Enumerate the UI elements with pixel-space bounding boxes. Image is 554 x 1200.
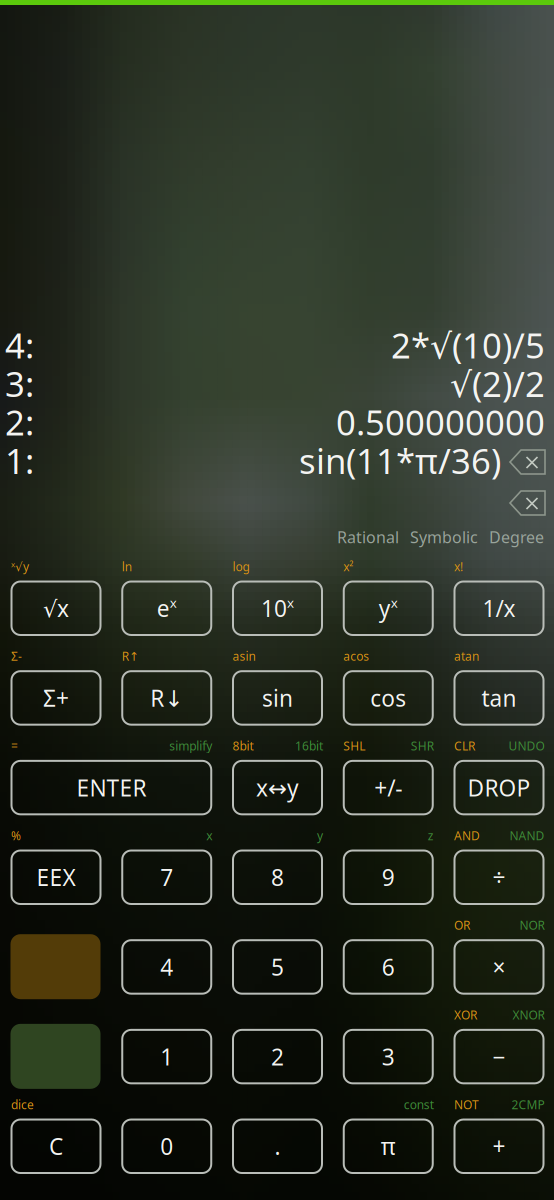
button[interactable]: 2: [5, 403, 65, 441]
staticText: 4: [5, 322, 34, 368]
staticText: sin [262, 683, 293, 713]
staticText: % [11, 827, 21, 843]
staticText: e [157, 593, 170, 623]
button[interactable]: 4: [5, 326, 65, 364]
staticText: x [206, 827, 212, 843]
staticText: Σ+ [43, 683, 69, 713]
staticText: 7 [160, 862, 173, 892]
staticText: x! [454, 558, 463, 574]
staticText: atan [454, 648, 479, 664]
staticText: x [287, 594, 294, 611]
button[interactable]: cos [344, 671, 433, 725]
button[interactable]: e [122, 581, 211, 635]
staticText: NOR [519, 917, 544, 933]
button[interactable]: sin(11*π/36) [65, 441, 501, 479]
staticText: 16bit [295, 738, 323, 754]
button[interactable]: 4 [122, 940, 211, 994]
button[interactable]: √(2)/2 [65, 364, 545, 402]
staticText: 2*√(10)/5 [391, 322, 545, 368]
button[interactable]: Σ+ [11, 671, 100, 725]
button[interactable]: ENTER [11, 761, 211, 814]
button[interactable]: 5 [233, 940, 322, 994]
staticText: OR [454, 917, 470, 933]
staticText: ln [122, 558, 132, 574]
button[interactable]: 3 [344, 1030, 433, 1083]
button[interactable]: Green shift key [10, 1024, 100, 1089]
staticText: tan [481, 683, 516, 713]
staticText: 9 [382, 862, 395, 892]
staticText: NOT [454, 1097, 479, 1112]
button[interactable]: y [344, 581, 433, 635]
button[interactable]: Orange shift key [10, 934, 100, 999]
staticText: √x [43, 593, 69, 623]
button[interactable]: 1 [122, 1030, 211, 1083]
button[interactable]: Symbolic [410, 526, 478, 548]
staticText: SHR [411, 738, 434, 754]
button[interactable]: π [344, 1119, 433, 1173]
staticText: Σ- [11, 648, 22, 664]
staticText: x² [343, 558, 353, 574]
staticText: +/- [374, 772, 402, 803]
staticText: cos [370, 683, 406, 713]
button[interactable]: Backspace [509, 449, 547, 476]
staticText: = [11, 738, 18, 754]
button[interactable]: sin [233, 671, 322, 725]
button[interactable]: 7 [122, 850, 211, 904]
button[interactable]: 1: [5, 441, 65, 479]
staticText: 2 [271, 1041, 284, 1072]
staticText: SHL [343, 738, 365, 754]
staticText: CLR [454, 738, 475, 754]
button[interactable]: 3: [5, 364, 65, 402]
staticText: ENTER [76, 772, 146, 803]
button[interactable]: 9 [344, 850, 433, 904]
staticText: × [492, 952, 505, 982]
staticText: simplify [169, 738, 212, 754]
staticText: NAND [509, 827, 544, 843]
staticText: 1/x [482, 593, 515, 623]
staticText: 3 [382, 1041, 395, 1072]
staticText: AND [454, 827, 480, 843]
staticText: − [492, 1041, 505, 1072]
button[interactable]: 8 [233, 850, 322, 904]
staticText: log [232, 558, 249, 574]
staticText: 2CMP [511, 1097, 544, 1112]
button[interactable]: Degree [489, 526, 544, 548]
button[interactable]: tan [454, 671, 543, 725]
button[interactable]: − [454, 1030, 543, 1083]
button[interactable]: . [233, 1119, 322, 1173]
staticText: 3: [5, 360, 34, 406]
staticText: R↑ [122, 648, 139, 664]
button[interactable]: EEX [11, 850, 100, 904]
button[interactable]: × [454, 940, 543, 994]
button[interactable]: 10 [233, 581, 322, 635]
button[interactable]: 0 [122, 1119, 211, 1173]
button[interactable]: 2 [233, 1030, 322, 1083]
button[interactable]: x↔y [233, 761, 322, 814]
staticText: 6 [382, 952, 395, 982]
button[interactable]: √x [11, 581, 100, 635]
button[interactable]: 1/x [454, 581, 543, 635]
button[interactable]: DROP [454, 761, 543, 814]
button[interactable]: +/- [344, 761, 433, 814]
staticText: UNDO [508, 738, 544, 754]
staticText: 2: [5, 399, 34, 445]
button[interactable]: C [11, 1119, 100, 1173]
staticText: asin [232, 648, 255, 664]
staticText: 8bit [232, 738, 253, 754]
staticText: x↔y [256, 772, 299, 803]
staticText: y [379, 593, 391, 623]
staticText: 5 [271, 952, 284, 982]
button[interactable]: 0.500000000 [65, 403, 545, 441]
button[interactable]: ÷ [454, 850, 543, 904]
button[interactable]: 6 [344, 940, 433, 994]
button[interactable]: R↓ [122, 671, 211, 725]
staticText: 8 [271, 862, 284, 892]
button[interactable]: + [454, 1119, 543, 1173]
button[interactable]: Clear entry [509, 490, 547, 517]
staticText: ÷ [492, 862, 505, 892]
button[interactable]: 2*√(10)/5 [65, 326, 545, 364]
button[interactable]: Rational [337, 526, 399, 548]
staticText: x [170, 594, 177, 611]
staticText: DROP [467, 772, 530, 803]
staticText: 1: [5, 437, 34, 483]
